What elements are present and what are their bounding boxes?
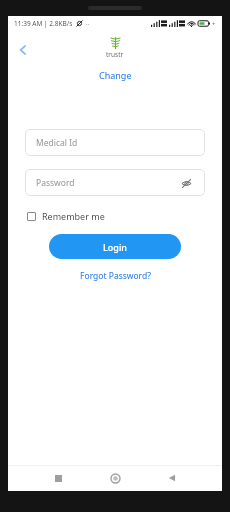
button[interactable]: Back [12,39,34,61]
staticText: ·· [86,20,90,28]
button[interactable]: Change [93,67,138,83]
button[interactable]: Show password [178,175,194,191]
staticText: Password [36,177,75,189]
button[interactable]: Forgot Password? [74,268,157,284]
staticText: trustr [106,50,124,59]
staticText: + [212,20,216,28]
button[interactable]: Remember me [25,208,107,224]
button[interactable]: Login [49,234,181,259]
button[interactable]: Password [25,169,205,196]
staticText: Change [99,69,132,81]
staticText: Remember me [42,210,105,222]
staticText: Forgot Password? [80,270,151,282]
button[interactable]: Home [105,468,125,488]
staticText: Medical Id [36,137,78,149]
button[interactable]: Back [162,468,182,488]
staticText: 11:39 AM | 2.8KB/s [14,19,73,28]
button[interactable]: Recents [48,468,68,488]
staticText: Login [103,241,127,253]
button[interactable]: Medical Id [25,129,205,156]
